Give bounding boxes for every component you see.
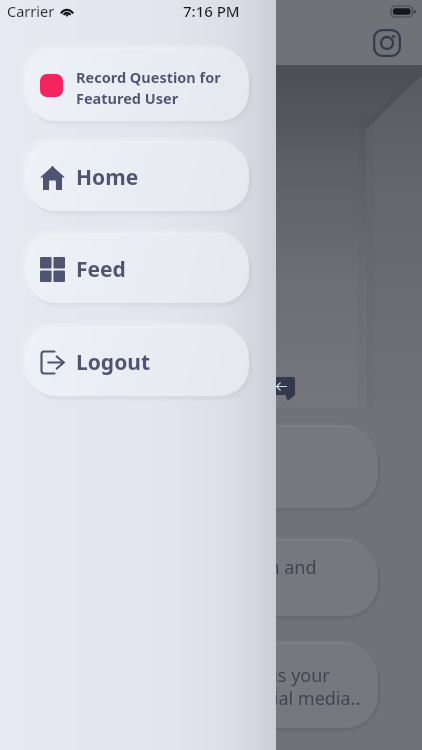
staticText: Ask your feature a question and wait. [47,555,317,602]
button[interactable]: They will record and send us your answer… [22,644,378,728]
staticText: Feed [76,255,126,284]
staticText: They will record and send us your answer… [47,663,361,710]
button[interactable]: Instagram [373,29,401,57]
button[interactable]: Back [258,377,295,395]
staticText: 7:16 PM [183,1,240,21]
button[interactable]: Logout [26,328,249,396]
button[interactable]: Ask your feature a question and wait. [22,541,378,616]
button[interactable]: Record Question for Featured User [26,50,249,121]
button[interactable]: Feed [26,235,249,303]
staticText: Home [76,163,139,192]
button[interactable]: Home [26,143,249,211]
button[interactable] [22,427,378,508]
staticText: Record Question for Featured User [76,67,239,109]
staticText: Logout [76,348,151,377]
staticText: Carrier [7,1,55,21]
